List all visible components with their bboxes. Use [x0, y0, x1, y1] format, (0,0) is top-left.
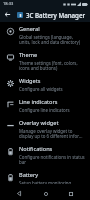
staticText: Configure notifications in status bar	[19, 154, 85, 165]
button[interactable]: Battery	[0, 168, 90, 187]
staticText: Notifications	[19, 145, 53, 153]
staticText: Theme	[19, 51, 38, 59]
staticText: Line indicators	[19, 98, 58, 106]
button[interactable]: Recent apps	[64, 187, 77, 200]
staticText: Configure all widgets	[19, 86, 63, 92]
staticText: Widgets	[19, 77, 41, 85]
button[interactable]: Overlay widget	[0, 116, 90, 142]
staticText: Global settings (language, units, lock a…	[19, 34, 85, 45]
button[interactable]: General	[0, 22, 90, 48]
button[interactable]: Notifications	[0, 142, 90, 168]
staticText: Setup battery monitoring	[19, 180, 72, 184]
button[interactable]: Theme	[0, 48, 90, 74]
button[interactable]: Navigate up	[0, 7, 15, 22]
staticText: 3C Battery Manager	[26, 11, 86, 19]
staticText: 18:33	[3, 1, 14, 6]
staticText: Battery	[19, 171, 39, 179]
button[interactable]: Back	[13, 187, 26, 200]
button[interactable]: Widgets	[0, 74, 90, 95]
staticText: Configure line indicators	[19, 107, 70, 113]
staticText: Overlay widget	[19, 119, 59, 127]
button[interactable]: Line indicators	[0, 95, 90, 116]
staticText: General	[19, 25, 40, 33]
button[interactable]: Home	[39, 187, 52, 200]
staticText: Manage overlay widget to display up to 6…	[19, 128, 85, 139]
staticText: Theme settings (font, colors, icons and …	[19, 60, 85, 71]
